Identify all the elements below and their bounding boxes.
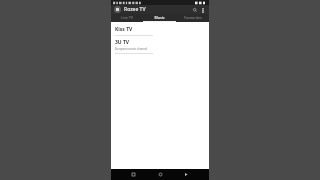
button[interactable]: More options [200,7,206,13]
staticText: Live TV [121,15,133,20]
staticText: European music channel [115,47,148,51]
button[interactable]: Search [191,6,198,13]
button[interactable]: Live TV [111,14,143,21]
button[interactable]: Recent apps [182,170,191,179]
button[interactable]: Favourites [176,14,209,21]
button[interactable]: Kiss TV [111,24,209,37]
button[interactable]: Home [156,170,165,179]
button[interactable]: Music [143,14,176,21]
staticText: Kiss TV [115,26,133,33]
button[interactable]: Open navigation [114,6,121,13]
staticText: 3U TV [115,39,130,46]
staticText: Favourites [184,15,202,20]
button[interactable]: Back [129,170,138,179]
staticText: Rozee TV [124,6,146,13]
button[interactable]: 3U TV [111,37,209,55]
staticText: Music [154,15,165,20]
